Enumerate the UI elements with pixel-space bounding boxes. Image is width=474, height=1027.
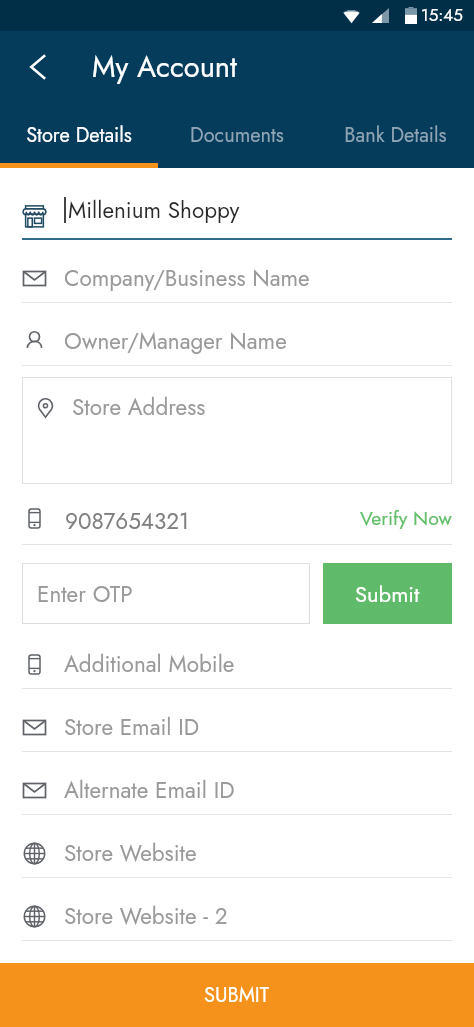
button[interactable]: Additional Mobile [0, 626, 474, 689]
staticText: 9087654321 [65, 505, 190, 538]
button[interactable]: Store Website [0, 815, 474, 878]
button[interactable]: Store Website - 2 [0, 878, 474, 941]
button[interactable]: Store Address [22, 377, 452, 484]
button[interactable]: Submit [323, 563, 452, 624]
staticText: 15:45 [421, 3, 463, 28]
staticText: Bank Details [344, 121, 447, 150]
button[interactable]: Store Details [0, 102, 158, 163]
button[interactable]: Bank Details [316, 102, 474, 163]
staticText: Enter OTP [37, 578, 133, 611]
staticText: Store Address [72, 391, 206, 424]
button[interactable]: Company/Business Name [0, 240, 474, 303]
staticText: Store Email ID [64, 711, 200, 744]
staticText: SUBMIT [204, 981, 270, 1010]
button[interactable]: Verify Now [360, 504, 452, 532]
staticText: Submit [355, 578, 420, 610]
button[interactable]: Back [16, 45, 60, 89]
staticText: Store Website [64, 837, 197, 870]
button[interactable]: Millenium Shoppy [0, 168, 474, 240]
staticText: Millenium Shoppy [68, 194, 240, 227]
staticText: Alternate Email ID [64, 774, 235, 807]
button[interactable]: SUBMIT [0, 963, 474, 1027]
button[interactable]: Store Email ID [0, 689, 474, 752]
button[interactable]: Documents [158, 102, 316, 163]
staticText: Store Details [26, 121, 132, 150]
staticText: Additional Mobile [64, 648, 235, 681]
staticText: Documents [190, 121, 284, 150]
button[interactable]: Enter OTP [22, 563, 310, 624]
button[interactable]: Owner/Manager Name [0, 303, 474, 366]
staticText: Store Website - 2 [64, 900, 228, 933]
staticText: Owner/Manager Name [64, 325, 287, 358]
staticText: Verify Now [360, 504, 452, 532]
button[interactable]: Alternate Email ID [0, 752, 474, 815]
staticText: Company/Business Name [64, 262, 310, 295]
staticText: My Account [92, 46, 238, 88]
